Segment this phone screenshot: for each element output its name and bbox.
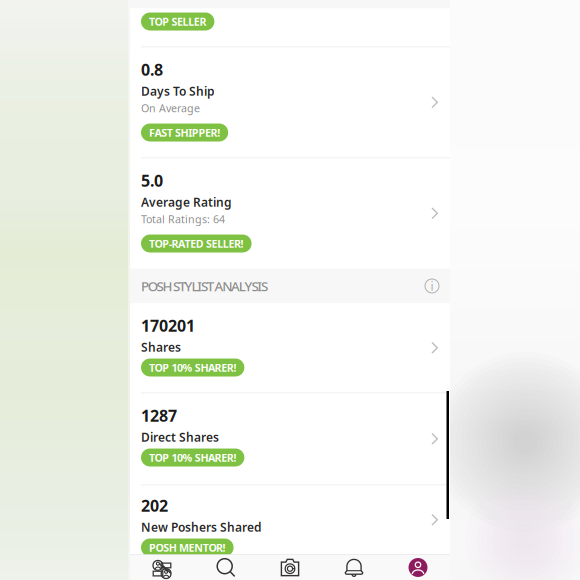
staticText: i [430, 278, 433, 294]
staticText: Days To Ship [141, 83, 215, 99]
staticText: On Average [141, 101, 200, 115]
staticText: POSH STYLIST ANALYSIS [141, 277, 268, 295]
button[interactable]: Notifications [322, 555, 386, 579]
staticText: New Poshers Shared [141, 519, 262, 535]
staticText: 170201 [141, 315, 195, 336]
staticText: 0.8 [141, 59, 163, 80]
button[interactable]: 1287 [130, 393, 450, 484]
button[interactable]: 202 [130, 485, 450, 554]
staticText: TOP 10% SHARER! [149, 360, 236, 375]
staticText: 1287 [141, 405, 177, 426]
staticText: Average Rating [141, 194, 232, 210]
staticText: TOP 10% SHARER! [149, 450, 236, 465]
staticText: TOP-RATED SELLER! [149, 236, 244, 251]
staticText: TOP SELLER [149, 14, 206, 29]
button[interactable]: 5.0 [130, 158, 450, 268]
staticText: 5.0 [141, 170, 163, 191]
button[interactable]: Account [386, 555, 450, 579]
button[interactable]: Feed [130, 555, 194, 579]
staticText: FAST SHIPPER! [149, 125, 220, 140]
staticText: 202 [141, 495, 168, 516]
button[interactable]: Info [424, 278, 440, 294]
staticText: Total Ratings: 64 [141, 212, 225, 226]
staticText: Shares [141, 339, 181, 355]
staticText: Direct Shares [141, 429, 219, 445]
button[interactable]: Search [194, 555, 258, 579]
button[interactable]: Sell [258, 555, 322, 579]
staticText: POSH MENTOR! [149, 540, 226, 555]
button[interactable]: 0.8 [130, 47, 450, 157]
button[interactable]: 170201 [130, 303, 450, 392]
